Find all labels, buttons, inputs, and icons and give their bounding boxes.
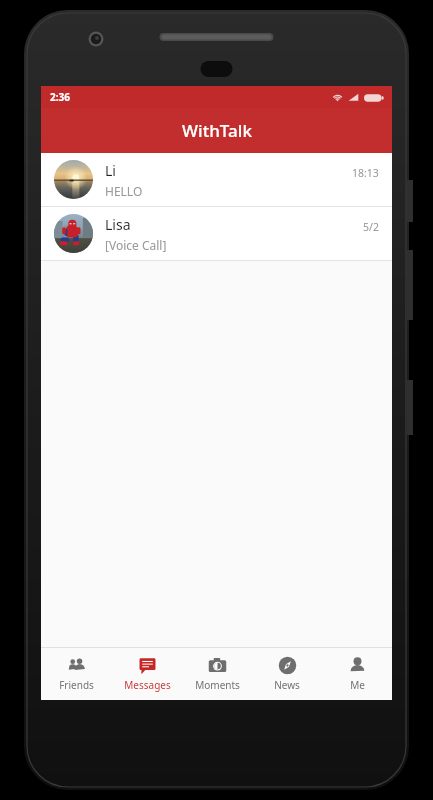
staticText: Messages	[124, 678, 171, 692]
staticText: Li	[105, 161, 116, 180]
button[interactable]: Messages	[112, 648, 182, 700]
button[interactable]: Friends	[41, 648, 112, 700]
staticText: Lisa	[105, 215, 131, 234]
staticText: HELLO	[105, 183, 143, 199]
staticText: 2:36	[50, 90, 70, 104]
staticText: 5/2	[363, 220, 379, 234]
staticText: Friends	[59, 678, 94, 692]
button[interactable]: News	[252, 648, 322, 700]
button[interactable]: Li	[41, 153, 392, 206]
button[interactable]: Moments	[182, 648, 252, 700]
staticText: News	[274, 678, 300, 692]
staticText: Moments	[195, 678, 240, 692]
staticText: Me	[350, 678, 365, 692]
staticText: [Voice Call]	[105, 237, 167, 253]
staticText: WithTalk	[182, 119, 252, 142]
staticText: 18:13	[352, 166, 379, 180]
button[interactable]: Lisa	[41, 207, 392, 260]
button[interactable]: Me	[322, 648, 392, 700]
